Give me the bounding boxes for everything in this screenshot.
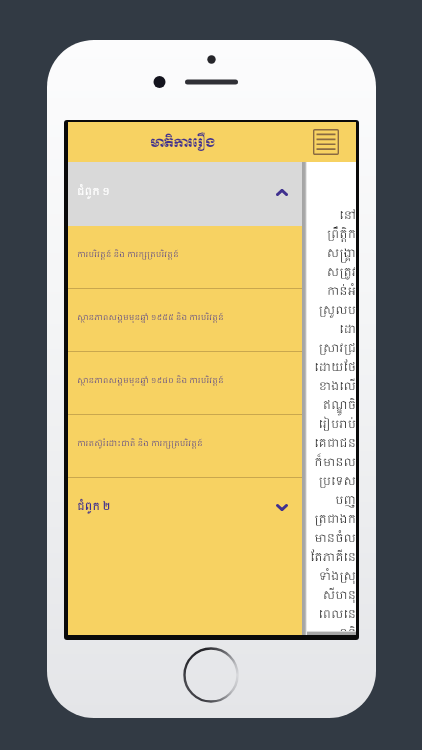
staticText: បញ្ [307,492,356,511]
staticText: ជំពូក ២ [77,499,111,516]
staticText: មាតិការរឿង [150,133,216,154]
staticText: ទន្ធិ [307,625,356,635]
staticText: ការបរិវត្តន៍ និង ការក្សត្របរិវត្តន៍ [77,248,179,261]
button[interactable]: Menu [313,129,339,155]
button[interactable]: ជំពូក ២ [68,478,302,541]
staticText: សត្រូវ [307,264,356,283]
staticText: ជំពូក ១ [77,184,110,201]
button[interactable]: ជំពូក ១ [68,162,302,226]
staticText: ដោ [307,321,356,340]
staticText: ស្ថានភាពសង្គមមុនឆ្នាំ ១៩៥៥ និង ការបរិវត្… [77,311,224,324]
staticText: ក៏មានល [307,454,356,473]
staticText: ពេលនេ [307,606,356,625]
button[interactable]: ការបរិវត្តន៍ និង ការក្សត្របរិវត្តន៍ [68,226,302,289]
staticText: នៅ [307,207,356,226]
button[interactable]: ស្ថានភាពសង្គមមុនឆ្នាំ ១៩៨០ និង ការបរិវត្… [68,352,302,415]
staticText: សីហនុ [307,587,356,606]
staticText: ឥណ្ឌូចិ [307,397,356,416]
staticText: មានចំល [307,530,356,549]
staticText: រៀបរាប់ [307,416,356,435]
staticText: សង្គ្រា [307,245,356,264]
staticText: ប្រទេស [307,473,356,492]
staticText: ត្រជាងក [307,511,356,530]
staticText: ព្រឹត្តិក [307,226,356,245]
button[interactable]: ស្ថានភាពសង្គមមុនឆ្នាំ ១៩៥៥ និង ការបរិវត្… [68,289,302,352]
staticText: កាន់អំ [307,283,356,302]
staticText: ស្ថានភាពសង្គមមុនឆ្នាំ ១៩៨០ និង ការបរិវត្… [77,374,224,387]
staticText: ទាំងស្រុ [307,568,356,587]
staticText: ខាងលើ [307,378,356,397]
staticText: ដោយថែ [307,359,356,378]
button[interactable]: ការតស៊ូរំដោះជាតិ និង ការក្សត្របរិវត្តន៍ [68,415,302,478]
staticText: ការតស៊ូរំដោះជាតិ និង ការក្សត្របរិវត្តន៍ [77,437,203,450]
staticText: ស្រួលប [307,302,356,321]
staticText: គេជាជន [307,435,356,454]
staticText: តែភាគីនេ [307,549,356,568]
staticText: ស្រាវជ្រ [307,340,356,359]
